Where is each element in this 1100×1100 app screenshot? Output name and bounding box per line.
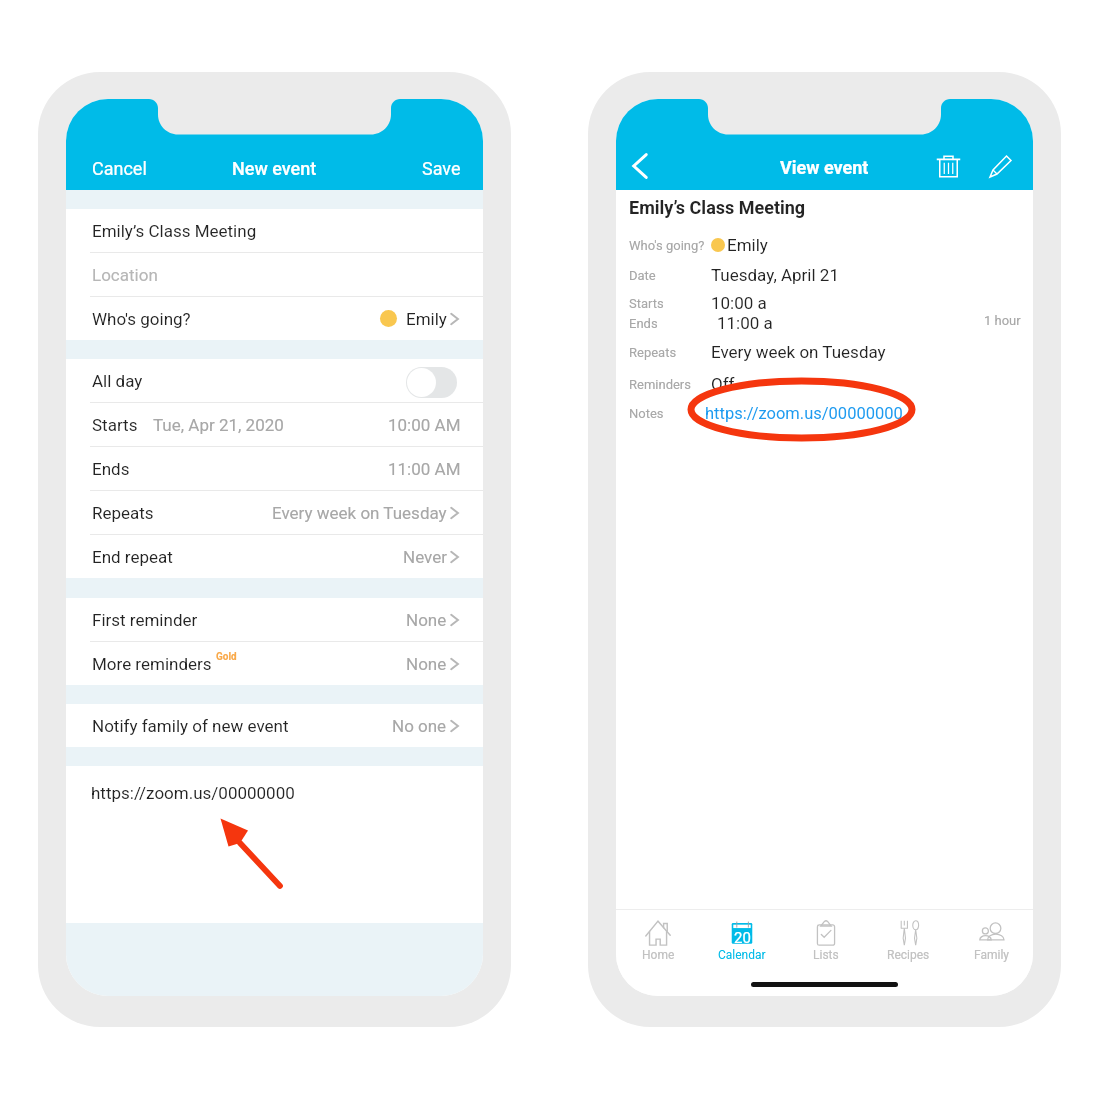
staticText: Tuesday, April 21: [711, 265, 839, 285]
staticText: New event: [232, 158, 317, 179]
staticText: Cancel: [92, 158, 147, 179]
staticText: Emily: [406, 309, 447, 329]
staticText: Calendar: [718, 948, 766, 962]
button[interactable]: First reminder: [66, 598, 483, 641]
button[interactable]: Recipes: [867, 910, 950, 962]
staticText: Ends: [92, 459, 130, 479]
staticText: No one: [392, 716, 447, 736]
button[interactable]: All day toggle: [406, 367, 457, 398]
button[interactable]: End repeat: [66, 535, 483, 578]
button[interactable]: Family: [950, 910, 1033, 962]
staticText: Never: [403, 547, 447, 567]
staticText: Notify family of new event: [92, 716, 289, 736]
staticText: Date: [629, 268, 656, 283]
staticText: https://zoom.us/00000000: [91, 783, 295, 803]
button[interactable]: Save: [414, 152, 469, 185]
staticText: First reminder: [92, 610, 198, 630]
button[interactable]: Cancel: [84, 152, 155, 185]
staticText: 10:00 a: [711, 293, 767, 313]
staticText: Repeats: [629, 345, 677, 360]
button[interactable]: Emily’s Class Meeting: [66, 209, 483, 252]
staticText: Every week on Tuesday: [272, 503, 447, 523]
staticText: Home: [642, 948, 675, 962]
staticText: Emily: [727, 235, 768, 255]
button[interactable]: Home: [616, 910, 700, 962]
staticText: Ends: [629, 316, 658, 331]
button[interactable]: https://zoom.us/00000000: [705, 404, 903, 423]
staticText: 1 hour: [984, 313, 1021, 328]
button[interactable]: All day: [66, 359, 483, 402]
staticText: Starts: [629, 296, 664, 311]
staticText: None: [406, 654, 447, 674]
staticText: https://zoom.us/00000000: [705, 404, 903, 423]
staticText: Repeats: [92, 503, 154, 523]
button[interactable]: Repeats: [66, 491, 483, 534]
staticText: All day: [92, 371, 143, 391]
staticText: 11:00 AM: [388, 459, 461, 479]
staticText: Who's going?: [629, 238, 705, 253]
staticText: Location: [92, 265, 158, 285]
staticText: Family: [974, 948, 1009, 962]
staticText: Emily’s Class Meeting: [92, 221, 257, 241]
staticText: View event: [780, 157, 869, 178]
staticText: End repeat: [92, 547, 173, 567]
staticText: Notes: [629, 406, 664, 421]
staticText: Off: [711, 374, 735, 394]
staticText: Lists: [813, 948, 839, 962]
staticText: 20: [734, 929, 751, 947]
button[interactable]: Back: [618, 144, 662, 188]
staticText: Gold: [216, 651, 237, 663]
button[interactable]: Edit: [978, 144, 1022, 188]
button[interactable]: Who's going?: [66, 297, 483, 340]
button[interactable]: 20: [700, 910, 784, 962]
staticText: Who's going?: [92, 309, 191, 329]
staticText: Reminders: [629, 377, 691, 392]
button[interactable]: Starts: [66, 403, 483, 446]
staticText: Starts: [92, 415, 138, 435]
button[interactable]: Notify family of new event: [66, 704, 483, 747]
button[interactable]: Delete: [926, 144, 970, 188]
button[interactable]: More reminders: [66, 642, 483, 685]
button[interactable]: Lists: [784, 910, 867, 962]
staticText: 10:00 AM: [388, 415, 461, 435]
staticText: None: [406, 610, 447, 630]
button[interactable]: Location: [66, 253, 483, 296]
staticText: Save: [422, 158, 461, 179]
staticText: More reminders: [92, 654, 212, 674]
staticText: 11:00 a: [717, 313, 773, 333]
staticText: Every week on Tuesday: [711, 342, 886, 362]
staticText: Recipes: [887, 948, 930, 962]
staticText: Tue, Apr 21, 2020: [153, 415, 284, 435]
button[interactable]: https://zoom.us/00000000: [66, 766, 483, 923]
staticText: Emily’s Class Meeting: [629, 197, 806, 218]
button[interactable]: Ends: [66, 447, 483, 490]
